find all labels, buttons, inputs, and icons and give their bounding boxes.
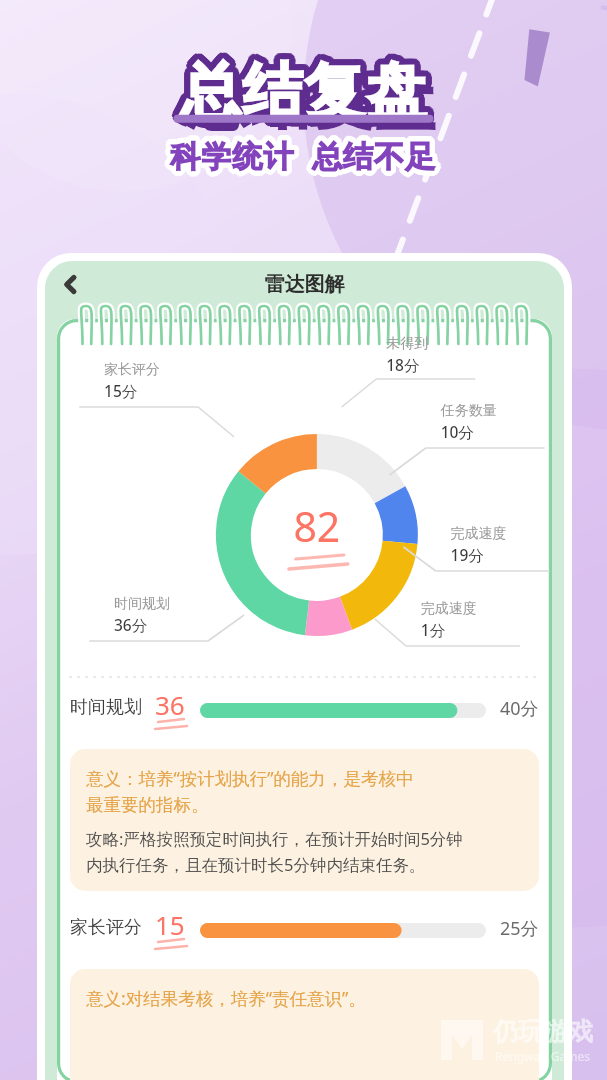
- button[interactable]: Back: [51, 265, 89, 303]
